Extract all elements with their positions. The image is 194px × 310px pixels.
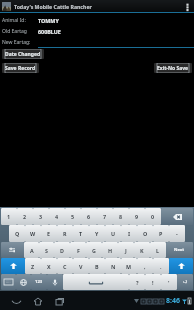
- button[interactable]: ?: [129, 274, 145, 290]
- staticText: -: [176, 230, 178, 237]
- staticText: Save Record: [5, 65, 36, 72]
- staticText: !: [152, 279, 154, 286]
- staticText: Y: [95, 230, 99, 237]
- staticText: New Eartag:: [2, 39, 31, 46]
- button[interactable]: 4: [49, 208, 65, 225]
- button[interactable]: 123: [31, 274, 47, 290]
- button[interactable]: S: [39, 242, 54, 258]
- button[interactable]: Shift: [169, 258, 193, 274]
- button[interactable]: R: [57, 225, 73, 242]
- staticText: Exit-No Save: [157, 65, 189, 72]
- button[interactable]: Next: [166, 242, 193, 258]
- staticText: 8:46: [166, 296, 180, 306]
- staticText: W: [30, 230, 36, 237]
- button[interactable]: P: [153, 225, 169, 242]
- button[interactable]: Space: [63, 274, 129, 290]
- staticText: ': [168, 279, 170, 286]
- staticText: R: [63, 230, 67, 237]
- staticText: C: [63, 263, 67, 270]
- staticText: Z: [31, 263, 35, 270]
- staticText: 2: [23, 213, 27, 220]
- staticText: J: [125, 247, 127, 254]
- button[interactable]: Home: [30, 293, 46, 309]
- button[interactable]: Voice input: [47, 274, 63, 290]
- staticText: I: [128, 230, 131, 237]
- button[interactable]: G: [86, 242, 102, 258]
- button[interactable]: Exit-No Save: [154, 63, 192, 73]
- button[interactable]: C: [57, 258, 73, 274]
- staticText: Q: [15, 230, 20, 237]
- button[interactable]: More options: [180, 0, 194, 13]
- button[interactable]: Save Record: [2, 63, 39, 73]
- staticText: E: [47, 230, 51, 237]
- button[interactable]: 2: [17, 208, 33, 225]
- button[interactable]: V: [73, 258, 89, 274]
- button[interactable]: 7: [97, 208, 113, 225]
- staticText: D: [60, 247, 64, 254]
- button[interactable]: 0: [145, 208, 161, 225]
- button[interactable]: N: [105, 258, 121, 274]
- button[interactable]: W: [25, 225, 41, 242]
- staticText: N: [111, 263, 116, 270]
- button[interactable]: L: [150, 242, 166, 258]
- button[interactable]: E: [41, 225, 57, 242]
- staticText: 0: [151, 213, 155, 220]
- button[interactable]: Change language: [16, 274, 31, 290]
- button[interactable]: .: [153, 258, 169, 274]
- staticText: 6: [87, 213, 91, 220]
- staticText: Today's Mobile Cattle Rancher: [14, 3, 92, 10]
- staticText: M: [126, 263, 132, 270]
- button[interactable]: Q: [9, 225, 25, 242]
- button[interactable]: ,: [137, 258, 153, 274]
- button[interactable]: Shift: [1, 258, 25, 274]
- button[interactable]: ': [161, 274, 177, 290]
- button[interactable]: Keyboard settings: [1, 274, 16, 290]
- staticText: B: [95, 263, 99, 270]
- button[interactable]: Tab: [1, 242, 24, 258]
- button[interactable]: 8: [113, 208, 129, 225]
- button[interactable]: Emoticons: [177, 274, 193, 290]
- staticText: Old Eartag: [2, 28, 27, 35]
- button[interactable]: !: [145, 274, 161, 290]
- button[interactable]: Y: [89, 225, 105, 242]
- button[interactable]: H: [102, 242, 118, 258]
- button[interactable]: Z: [25, 258, 41, 274]
- button[interactable]: B: [89, 258, 105, 274]
- button[interactable]: Recent apps: [52, 293, 68, 309]
- staticText: 3: [39, 213, 43, 220]
- staticText: TOMMY: [38, 17, 59, 24]
- button[interactable]: 9: [129, 208, 145, 225]
- button[interactable]: Back: [8, 293, 24, 309]
- staticText: U: [111, 230, 116, 237]
- button[interactable]: F: [70, 242, 86, 258]
- staticText: 1: [7, 213, 11, 220]
- staticText: A: [30, 247, 34, 254]
- staticText: 7: [103, 213, 107, 220]
- staticText: F: [77, 247, 80, 254]
- button[interactable]: 1: [1, 208, 17, 225]
- staticText: K: [140, 247, 144, 254]
- button[interactable]: M: [121, 258, 137, 274]
- button[interactable]: J: [118, 242, 134, 258]
- button[interactable]: -: [169, 225, 185, 242]
- staticText: ,: [144, 263, 146, 270]
- staticText: T: [79, 230, 83, 237]
- button[interactable]: 5: [65, 208, 81, 225]
- button[interactable]: I: [121, 225, 137, 242]
- button[interactable]: O: [137, 225, 153, 242]
- button[interactable]: Date Changed: [2, 49, 44, 59]
- staticText: 5: [71, 213, 75, 220]
- button[interactable]: D: [54, 242, 70, 258]
- staticText: V: [79, 263, 83, 270]
- button[interactable]: 6: [81, 208, 97, 225]
- button[interactable]: T: [73, 225, 89, 242]
- button[interactable]: A: [24, 242, 39, 258]
- button[interactable]: 3: [33, 208, 49, 225]
- button[interactable]: Delete: [161, 208, 193, 225]
- staticText: 4: [55, 213, 59, 220]
- button[interactable]: U: [105, 225, 121, 242]
- button[interactable]: K: [134, 242, 150, 258]
- staticText: Date Changed: [5, 51, 41, 58]
- staticText: G: [92, 247, 96, 254]
- button[interactable]: X: [41, 258, 57, 274]
